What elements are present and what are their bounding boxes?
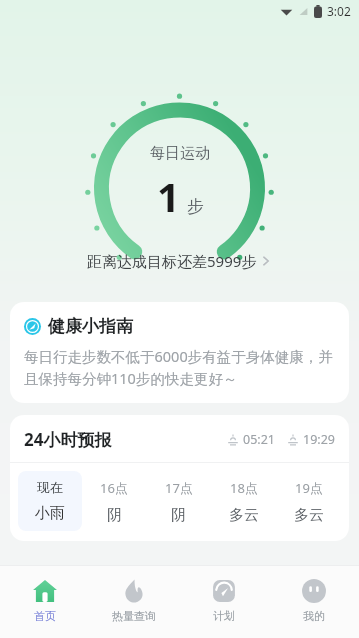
staticText: 19点 xyxy=(295,479,323,497)
button[interactable]: 我的 xyxy=(269,566,359,638)
button[interactable]: 16点 xyxy=(82,471,146,533)
button[interactable]: 现在 xyxy=(18,471,82,531)
staticText: 现在 xyxy=(37,479,63,495)
staticText: 我的 xyxy=(303,609,325,623)
staticText: 热量查询 xyxy=(112,609,156,623)
staticText: 小雨 xyxy=(35,504,65,523)
other: 我的 xyxy=(301,578,327,604)
button[interactable]: 18点 xyxy=(211,471,276,533)
staticText: 每日运动 xyxy=(150,144,210,163)
staticText: 18点 xyxy=(230,479,258,497)
staticText: 计划 xyxy=(213,609,235,623)
staticText: 阴 xyxy=(107,506,122,525)
staticText: 多云 xyxy=(294,506,324,525)
other: 热量查询 xyxy=(121,578,147,604)
staticText: 首页 xyxy=(34,609,56,623)
staticText: 阴 xyxy=(171,506,186,525)
staticText: 距离达成目标还差5999步 xyxy=(87,251,257,271)
staticText: 每日行走步数不低于6000步有益于身体健康，并且保持每分钟110步的快走更好～ xyxy=(24,346,335,389)
button[interactable]: 首页 xyxy=(0,566,89,638)
staticText: 多云 xyxy=(229,506,259,525)
other: 计划 xyxy=(211,578,237,604)
staticText: 05:21 xyxy=(243,431,275,448)
staticText: 24小时预报 xyxy=(24,428,112,451)
button[interactable]: 健康小指南 xyxy=(10,302,349,403)
other: 首页 xyxy=(32,578,58,604)
staticText: 17点 xyxy=(165,479,193,497)
staticText: 步 xyxy=(187,196,204,217)
button[interactable]: 19点 xyxy=(276,471,341,533)
staticText: 健康小指南 xyxy=(48,316,133,337)
button[interactable]: 热量查询 xyxy=(89,566,179,638)
staticText: 3:02 xyxy=(327,3,351,19)
button[interactable]: 计划 xyxy=(179,566,269,638)
staticText: 16点 xyxy=(100,479,128,497)
button[interactable]: 距离达成目标还差5999步 xyxy=(81,247,278,275)
button[interactable]: 17点 xyxy=(146,471,211,533)
staticText: 19:29 xyxy=(303,431,335,448)
staticText: 1 xyxy=(157,169,180,223)
